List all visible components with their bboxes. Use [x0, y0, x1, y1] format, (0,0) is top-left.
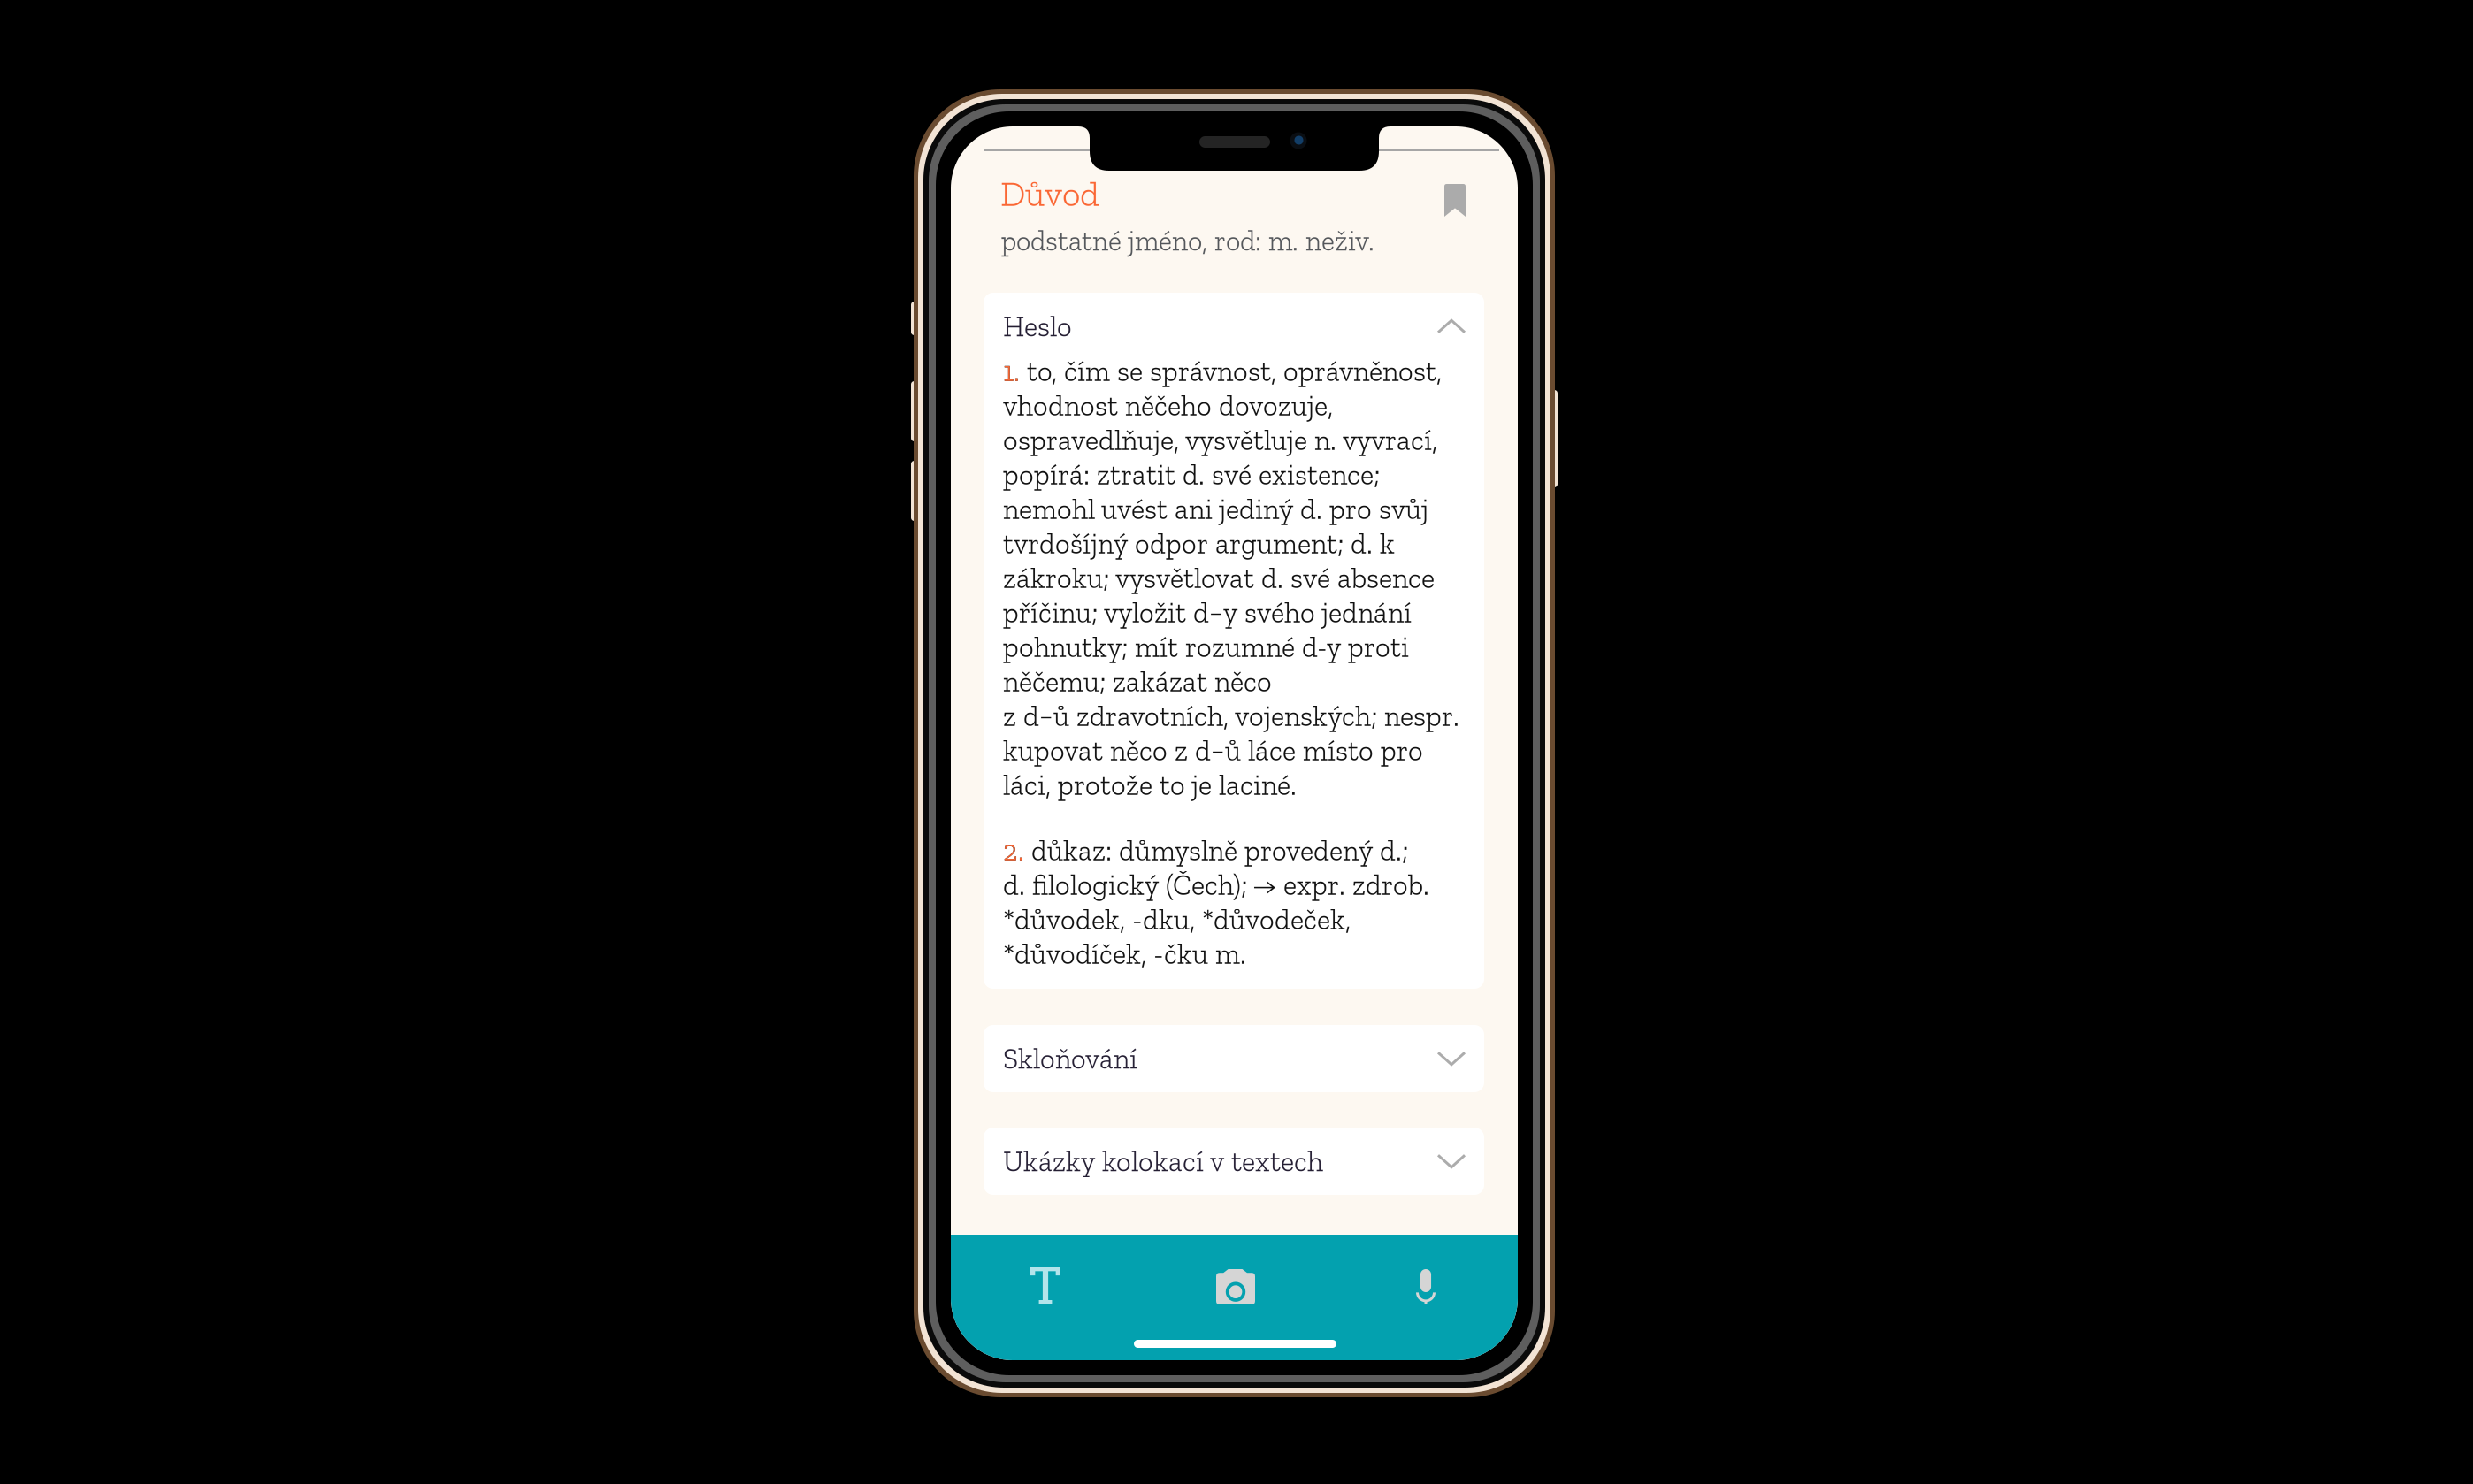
button[interactable]: Camera search [1140, 1235, 1329, 1320]
staticText: Důvod [1000, 172, 1099, 215]
button[interactable]: Bookmark [1435, 174, 1475, 226]
staticText: 2. důkaz: důmyslně provedený d.; d. filo… [1003, 833, 1429, 971]
button[interactable]: Ukázky kolokací v textech [984, 1128, 1484, 1195]
staticText: Ukázky kolokací v textech [1003, 1144, 1323, 1178]
button[interactable]: Voice search [1329, 1235, 1518, 1320]
button[interactable]: Skloňování [984, 1025, 1484, 1092]
staticText: 1. to, čím se správnost, oprávněnost, vh… [1003, 354, 1459, 802]
staticText: 1. [1003, 354, 1020, 388]
button[interactable]: Text search [951, 1235, 1140, 1320]
button[interactable]: Heslo [984, 293, 1484, 360]
staticText: Skloňování [1003, 1041, 1137, 1076]
staticText: podstatné jméno, rod: m. neživ. [1001, 224, 1374, 258]
staticText: 2. [1003, 833, 1024, 868]
staticText: Heslo [1003, 309, 1072, 344]
